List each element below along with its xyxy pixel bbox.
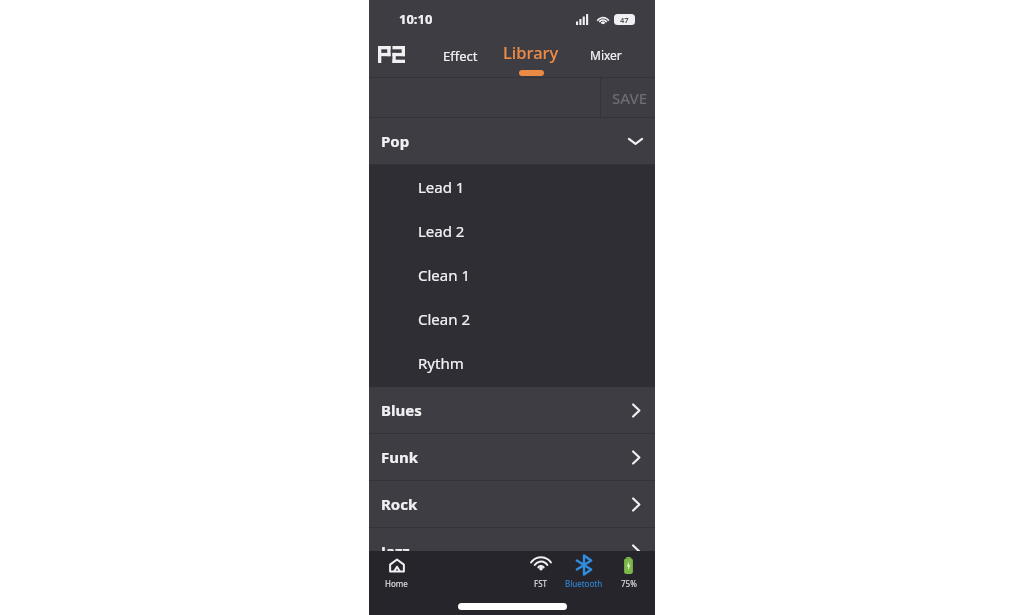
other: Battery 75 percent <box>623 557 634 574</box>
staticText: Effect <box>443 47 478 65</box>
button[interactable]: Clean 2 <box>369 297 655 341</box>
button[interactable]: Mixer <box>582 38 630 77</box>
button[interactable]: Funk <box>369 434 655 480</box>
other: FST WiFi <box>531 558 551 572</box>
button[interactable]: FST WiFi <box>523 551 558 589</box>
button[interactable]: Library <box>503 38 559 77</box>
button[interactable]: Jazz <box>369 528 655 551</box>
other: Bluetooth <box>575 554 593 576</box>
staticText: Library <box>503 41 559 63</box>
button[interactable]: Home <box>379 551 414 589</box>
staticText: 75% <box>621 578 637 589</box>
button[interactable]: SAVE <box>601 78 655 117</box>
button[interactable]: Bluetooth <box>559 551 609 589</box>
button[interactable]: Lead 2 <box>369 209 655 253</box>
button[interactable]: Rock <box>369 481 655 527</box>
button[interactable]: Blues <box>369 387 655 433</box>
staticText: Pop <box>381 131 410 151</box>
staticText: Blues <box>381 400 422 420</box>
staticText: Rythm <box>418 353 464 373</box>
staticText: Bluetooth <box>565 578 603 589</box>
button[interactable]: Pop <box>369 118 655 164</box>
staticText: Clean 1 <box>418 265 470 285</box>
staticText: Lead 1 <box>418 177 465 197</box>
button[interactable]: Lead 1 <box>369 165 655 209</box>
button[interactable]: Battery 75 percent <box>611 551 646 589</box>
other: Home <box>389 558 405 573</box>
staticText: Rock <box>381 494 418 514</box>
staticText: 10:10 <box>399 10 433 28</box>
staticText: Clean 2 <box>418 309 470 329</box>
staticText: Lead 2 <box>418 221 465 241</box>
button[interactable]: Effect <box>435 38 485 77</box>
button[interactable]: Rythm <box>369 341 655 385</box>
staticText: FST <box>534 578 547 589</box>
staticText: Jazz <box>381 541 410 551</box>
staticText: SAVE <box>612 88 648 108</box>
staticText: 47 <box>620 15 629 25</box>
staticText: Home <box>385 578 408 589</box>
staticText: Mixer <box>590 47 622 63</box>
staticText: Funk <box>381 447 419 467</box>
button[interactable]: Clean 1 <box>369 253 655 297</box>
other: P2 logo <box>378 46 405 63</box>
